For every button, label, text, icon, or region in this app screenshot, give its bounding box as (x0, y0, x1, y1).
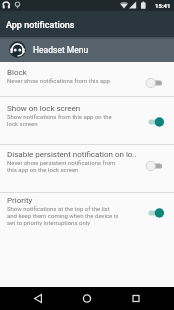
button[interactable]: Headset Menu (0, 37, 174, 62)
staticText: 15:41 (155, 2, 171, 9)
button[interactable]: Priority (0, 193, 174, 249)
staticText: Show notifications from this app on the … (7, 113, 112, 127)
button[interactable] (58, 287, 116, 310)
staticText: Priority (7, 196, 33, 205)
staticText: Headset Menu (33, 45, 89, 55)
button[interactable]: Block (0, 62, 174, 97)
button[interactable]: Disable persistent notification on lo.. (0, 145, 174, 193)
staticText: Disable persistent notification on lo.. (7, 150, 137, 159)
staticText: Show notifications at the top of the lis… (7, 205, 119, 226)
staticText: Show on lock screen (7, 104, 81, 113)
staticText: App notifications (6, 20, 75, 31)
button[interactable]: Show on lock screen (0, 97, 174, 145)
button[interactable] (116, 287, 174, 310)
staticText: Never show notifications from this app (7, 77, 110, 84)
button[interactable] (0, 287, 58, 310)
staticText: Block (7, 68, 27, 77)
staticText: Never show persistent notifications from… (7, 159, 116, 173)
